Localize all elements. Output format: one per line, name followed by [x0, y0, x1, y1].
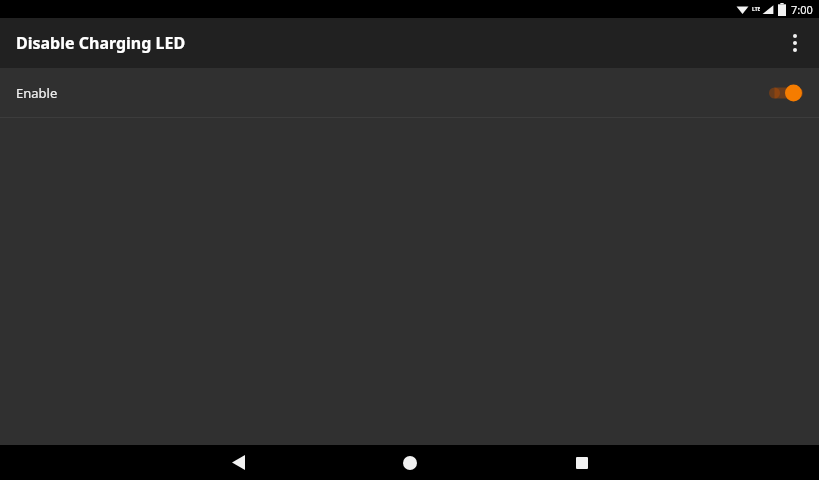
button[interactable]: Recent apps — [559, 445, 605, 480]
button[interactable]: Back — [215, 445, 261, 480]
button[interactable]: Enable toggle, on — [769, 81, 803, 105]
button[interactable]: Home — [387, 445, 433, 480]
staticText: LTE — [752, 6, 761, 13]
button[interactable]: More options — [771, 19, 819, 67]
staticText: Enable — [16, 84, 769, 102]
staticText: 7:00 — [791, 2, 813, 17]
button[interactable]: Enable — [0, 68, 819, 117]
staticText: Disable Charging LED — [16, 32, 186, 54]
